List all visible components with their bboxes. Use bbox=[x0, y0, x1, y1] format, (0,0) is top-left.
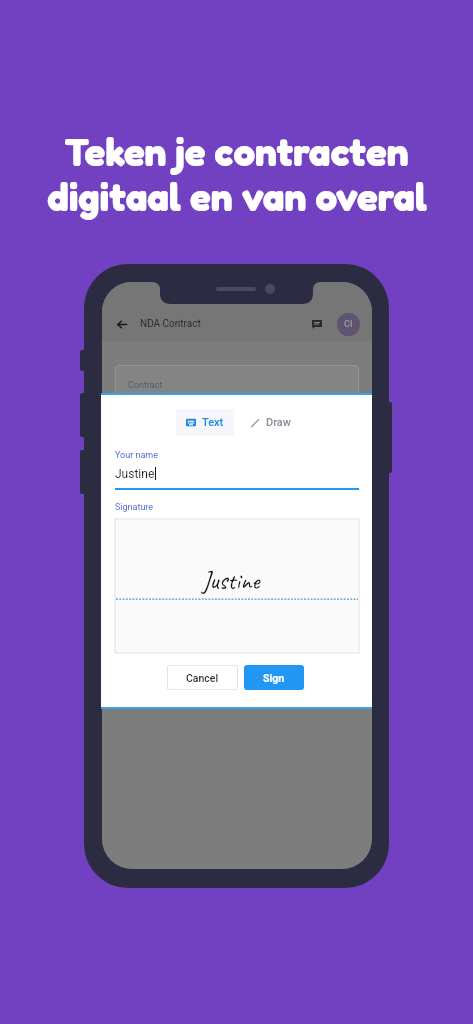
staticText: Text bbox=[202, 416, 224, 429]
staticText: Contract bbox=[128, 380, 163, 391]
staticText: Signature bbox=[115, 502, 154, 513]
staticText: Draw bbox=[266, 416, 291, 429]
staticText: Your name bbox=[115, 450, 159, 461]
staticText: CI bbox=[344, 319, 353, 330]
staticText: Sign bbox=[263, 672, 285, 684]
button[interactable]: Draw bbox=[248, 409, 293, 436]
staticText: digitaal en van overal bbox=[47, 173, 427, 220]
button[interactable]: Cancel bbox=[167, 665, 238, 690]
staticText: Teken je contracten bbox=[64, 128, 409, 175]
staticText: NDA Contract bbox=[140, 318, 201, 330]
staticText: Justine bbox=[202, 565, 260, 597]
button[interactable]: CI bbox=[337, 313, 360, 336]
staticText: Cancel bbox=[186, 672, 219, 684]
button[interactable]: Text bbox=[176, 409, 234, 436]
button[interactable]: Back bbox=[117, 320, 127, 329]
button[interactable]: Sign bbox=[244, 665, 304, 690]
button[interactable]: Comments bbox=[312, 320, 322, 329]
staticText: Justine bbox=[115, 467, 155, 481]
